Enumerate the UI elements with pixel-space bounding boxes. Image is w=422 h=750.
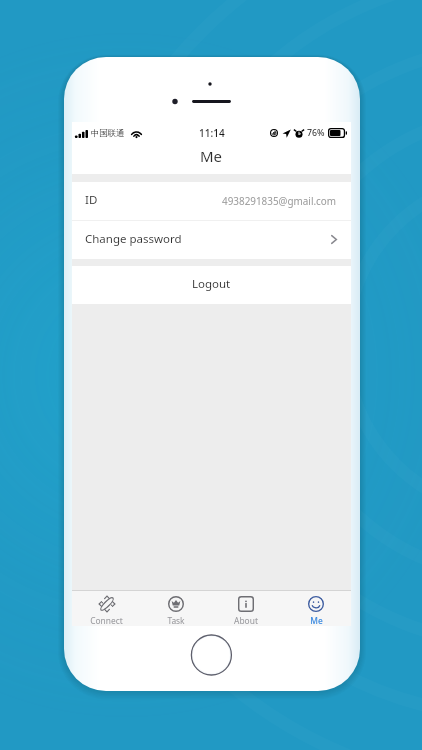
staticText: 76% <box>307 127 325 139</box>
staticText: 4938291835@gmail.com <box>222 194 337 207</box>
button[interactable]: Task <box>141 591 211 626</box>
staticText: Task <box>167 615 185 626</box>
staticText: Me <box>310 615 323 626</box>
staticText: ID <box>85 192 98 208</box>
button[interactable]: Change password <box>72 221 351 259</box>
staticText: 中国联通 <box>91 128 125 139</box>
button[interactable]: ID <box>72 182 351 220</box>
staticText: 11:14 <box>199 126 225 140</box>
staticText: Change password <box>85 231 182 247</box>
button[interactable]: Logout <box>72 266 351 304</box>
button[interactable]: Connect <box>72 591 141 626</box>
staticText: Logout <box>192 276 231 292</box>
button[interactable]: Me <box>281 591 351 626</box>
staticText: Me <box>200 146 223 166</box>
button[interactable]: About <box>211 591 281 626</box>
staticText: Connect <box>90 615 123 626</box>
staticText: About <box>234 615 258 626</box>
